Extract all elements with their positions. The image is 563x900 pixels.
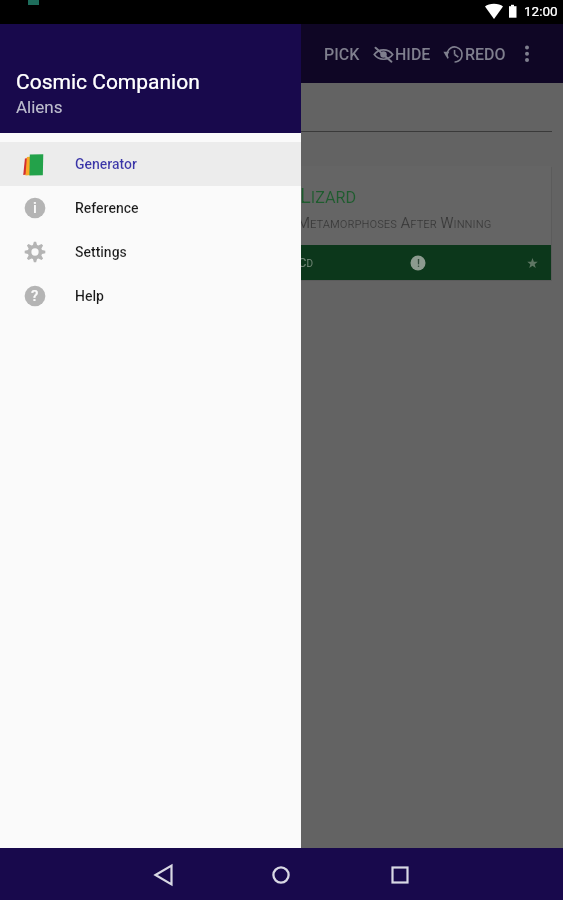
staticText: HIDE — [395, 45, 431, 64]
button[interactable]: HIDE — [369, 30, 435, 78]
staticText: CD — [298, 255, 314, 270]
staticText: LIZARD — [300, 184, 357, 207]
staticText: REDO — [465, 45, 506, 64]
button[interactable]: Favourite — [518, 249, 546, 277]
button[interactable]: REDO — [439, 30, 510, 78]
button[interactable]: Back — [142, 853, 186, 897]
button[interactable]: Settings — [0, 230, 301, 274]
button[interactable]: More options — [511, 38, 543, 70]
button[interactable]: Info — [403, 248, 433, 278]
staticText: 12:00 — [524, 3, 558, 19]
staticText: Cosmic Companion — [16, 70, 200, 95]
button[interactable]: i — [0, 186, 301, 230]
staticText: Aliens — [16, 97, 63, 117]
staticText: Help — [75, 288, 104, 304]
staticText: PICK — [324, 45, 360, 64]
staticText: ? — [31, 287, 39, 305]
button[interactable]: PICK — [316, 30, 368, 78]
staticText: Reference — [75, 200, 139, 216]
staticText: i — [33, 199, 37, 217]
staticText: Settings — [75, 244, 127, 260]
button[interactable]: Home — [259, 853, 303, 897]
button[interactable]: ? — [0, 274, 301, 318]
button[interactable]: Generator — [0, 142, 301, 186]
staticText: Generator — [75, 156, 137, 172]
button[interactable]: Recents — [378, 853, 422, 897]
staticText: ! — [417, 257, 420, 270]
staticText: METAMORPHOSES AFTER WINNING — [297, 214, 492, 232]
